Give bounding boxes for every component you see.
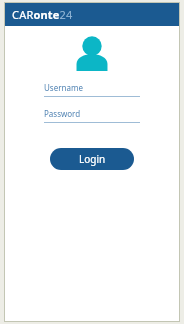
button[interactable]: Password [44,108,140,123]
staticText: Login [79,152,106,166]
staticText: CARonte24 [12,7,73,22]
button[interactable]: Username [44,82,140,97]
button[interactable]: Login [50,148,134,170]
staticText: Password [44,108,81,119]
button[interactable]: CARonte24 [4,2,180,26]
staticText: Username [44,82,83,93]
